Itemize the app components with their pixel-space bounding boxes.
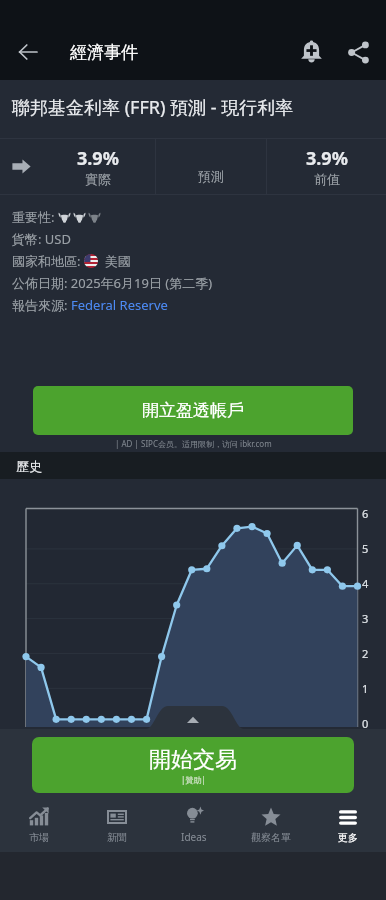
button[interactable]: Ideas (155, 798, 232, 852)
staticText: Ideas (181, 830, 207, 844)
staticText: 1 (362, 681, 369, 696)
staticText: 前值 (314, 171, 340, 187)
staticText: 美國 (98, 252, 131, 270)
staticText: 經濟事件 (70, 42, 138, 63)
button[interactable]: 觀察名單 (232, 798, 309, 852)
button[interactable]: 開始交易 (32, 737, 354, 793)
staticText: 5 (362, 541, 369, 556)
staticText: 報告來源: (12, 296, 71, 314)
staticText: 預測 (198, 168, 224, 184)
staticText: 3.9% (306, 146, 348, 171)
staticText: 3 (362, 611, 369, 626)
staticText: 4 (362, 576, 369, 591)
staticText: 實際 (85, 171, 111, 187)
staticText: 觀察名單 (251, 831, 291, 844)
staticText: 貨幣: USD (12, 230, 71, 248)
staticText: 2 (362, 646, 369, 661)
button[interactable]: Federal Reserve (71, 296, 168, 314)
staticText: 開始交易 (149, 746, 237, 774)
staticText: 公佈日期: 2025年6月19日 (第二季) (12, 274, 213, 292)
button[interactable]: 開立盈透帳戶 (33, 386, 353, 435)
staticText: 0 (362, 716, 369, 731)
staticText: 國家和地區: (12, 252, 84, 270)
staticText: 市場 (29, 831, 49, 844)
button[interactable]: 更多 (309, 798, 386, 852)
button[interactable]: Share (335, 29, 381, 75)
button[interactable]: 新聞 (78, 798, 155, 852)
staticText: 新聞 (107, 831, 127, 844)
staticText: 更多 (338, 831, 358, 844)
button[interactable]: Add alert (288, 29, 334, 75)
staticText: 聯邦基金利率 (FFR) 預測 - 現行利率 (12, 95, 294, 120)
staticText: 3.9% (77, 146, 119, 171)
staticText: 重要性: (12, 208, 58, 226)
button[interactable]: 市場 (0, 798, 78, 852)
staticText: 6 (362, 506, 369, 521)
staticText: 歷史 (16, 458, 42, 474)
staticText: 開立盈透帳戶 (142, 400, 244, 421)
staticText: |贊助| (181, 774, 206, 785)
staticText: | AD | SIPC会员。适用限制，访问 ibkr.com (115, 438, 272, 449)
button[interactable]: Back (5, 29, 51, 75)
